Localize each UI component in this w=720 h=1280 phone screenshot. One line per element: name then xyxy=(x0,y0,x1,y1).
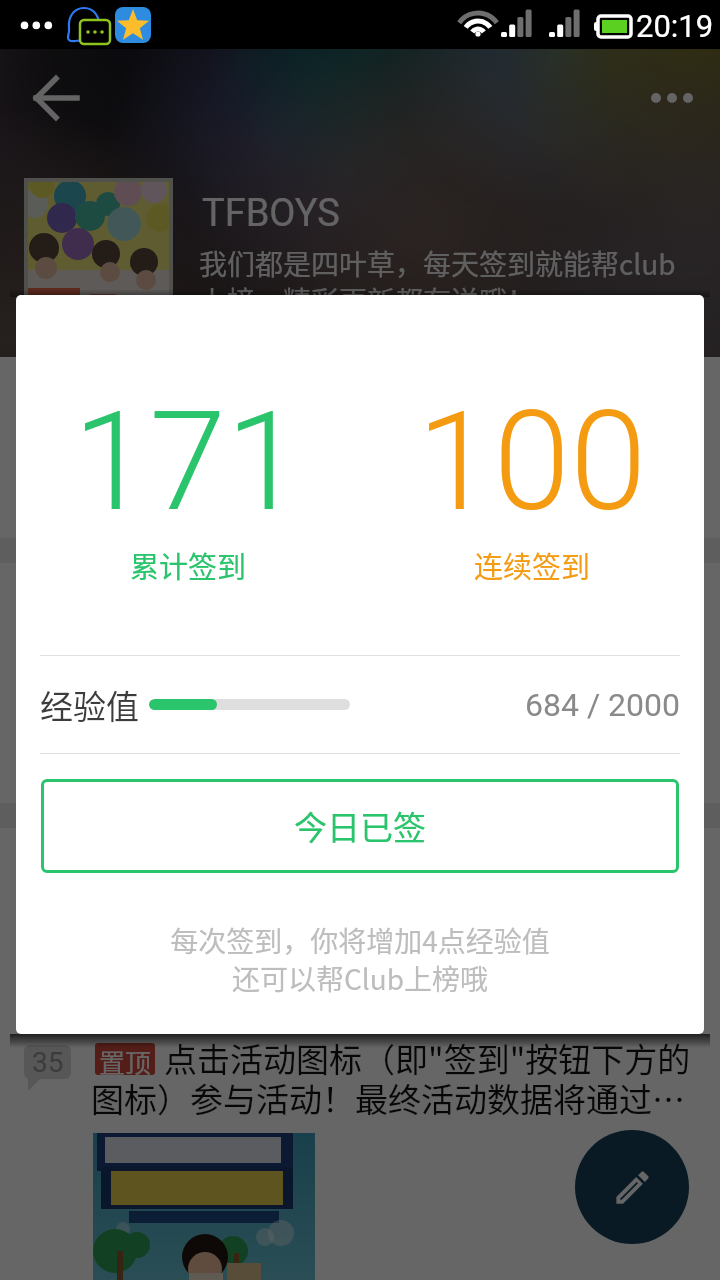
staticText: 累计签到 xyxy=(130,544,247,586)
staticText: 20:19 xyxy=(636,8,714,44)
staticText: 100 xyxy=(417,381,647,543)
button[interactable] xyxy=(93,1133,315,1280)
button[interactable]: More options xyxy=(640,74,704,122)
staticText: 图标）参与活动！最终活动数据将通过… xyxy=(91,1074,685,1122)
staticText: 今日已签 xyxy=(294,802,426,850)
staticText: 35 xyxy=(32,1046,64,1079)
button[interactable]: Back xyxy=(22,64,90,132)
staticText: 每次签到，你将增加4点经验值 还可以帮Club上榜哦 xyxy=(16,920,704,999)
staticText: 经验值 xyxy=(40,681,139,729)
button[interactable]: Compose post xyxy=(575,1130,689,1244)
staticText: 171 xyxy=(73,381,303,543)
button[interactable]: 今日已签 xyxy=(41,779,679,873)
staticText: 我们都是四叶草，每天签到就能帮club 上榜，精彩更新都有送哦！ xyxy=(199,243,676,320)
staticText: 置顶 xyxy=(99,1043,152,1075)
staticText: TFBOYS xyxy=(202,191,340,236)
staticText: 点击活动图标（即"签到"按钮下方的 xyxy=(164,1034,691,1082)
staticText: 连续签到 xyxy=(474,544,591,586)
staticText: 684 / 2000 xyxy=(525,686,680,724)
